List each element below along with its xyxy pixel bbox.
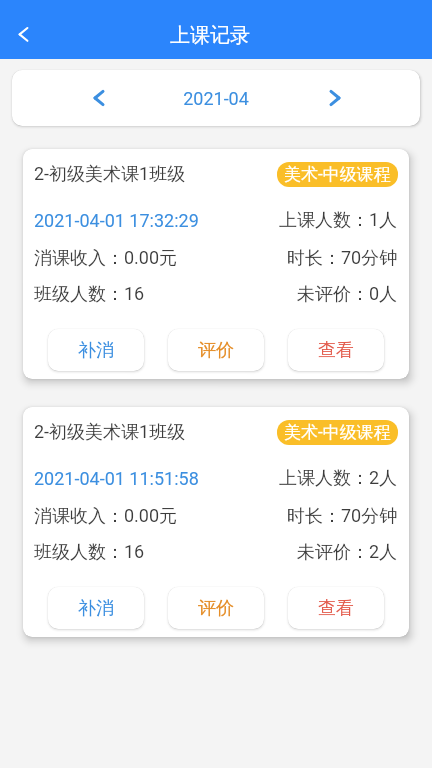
button[interactable]: 查看 [288, 587, 384, 629]
staticText: 未评价：0人 [297, 283, 398, 306]
button[interactable]: Next month [280, 70, 420, 126]
staticText: 2021-04-01 17:32:29 [34, 210, 199, 231]
button[interactable]: 补消 [48, 329, 144, 371]
staticText: 上课记录 [170, 23, 250, 48]
button[interactable]: 评价 [168, 587, 264, 629]
staticText: 2-初级美术课1班级 [34, 421, 186, 444]
staticText: 评价 [198, 339, 234, 362]
staticText: 查看 [318, 339, 354, 362]
button[interactable]: 查看 [288, 329, 384, 371]
staticText: 未评价：2人 [297, 541, 398, 564]
staticText: 美术-中级课程 [284, 422, 391, 443]
staticText: 班级人数：16 [34, 283, 145, 306]
staticText: 美术-中级课程 [284, 164, 391, 185]
staticText: 2021-04-01 11:51:58 [34, 468, 199, 489]
staticText: 时长：70分钟 [287, 505, 398, 528]
button[interactable]: 补消 [48, 587, 144, 629]
button[interactable]: 评价 [168, 329, 264, 371]
staticText: 补消 [78, 339, 114, 362]
staticText: 2-初级美术课1班级 [34, 163, 186, 186]
staticText: 补消 [78, 597, 114, 620]
staticText: 消课收入：0.00元 [34, 247, 178, 270]
staticText: 班级人数：16 [34, 541, 145, 564]
staticText: 评价 [198, 597, 234, 620]
button[interactable]: Previous month [12, 70, 152, 126]
button[interactable]: Back [0, 0, 48, 59]
staticText: 消课收入：0.00元 [34, 505, 178, 528]
staticText: 上课人数：1人 [279, 209, 398, 232]
staticText: 2021-04 [183, 88, 249, 109]
staticText: 时长：70分钟 [287, 247, 398, 270]
staticText: 查看 [318, 597, 354, 620]
staticText: 上课人数：2人 [279, 467, 398, 490]
